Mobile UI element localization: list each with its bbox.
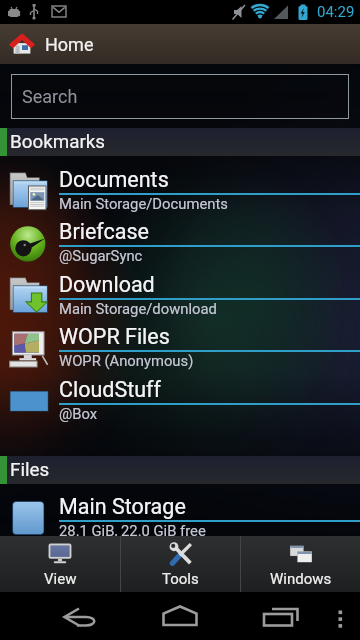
staticText: Main Storage/Documents bbox=[59, 195, 228, 212]
staticText: CloudStuff bbox=[59, 377, 162, 402]
staticText: Main Storage bbox=[59, 494, 186, 519]
button[interactable]: Windows bbox=[241, 536, 360, 592]
button[interactable]: Documents bbox=[0, 157, 360, 209]
staticText: Download bbox=[59, 272, 155, 297]
button[interactable]: Search bbox=[11, 74, 349, 119]
staticText: Windows bbox=[270, 570, 332, 588]
button[interactable]: Tools bbox=[121, 536, 240, 592]
staticText: WOPR (Anonymous) bbox=[59, 352, 194, 369]
button[interactable]: Recent apps bbox=[270, 592, 330, 640]
staticText: 04:29 bbox=[317, 3, 355, 21]
staticText: 28.1 GiB, 22.0 GiB free bbox=[59, 522, 206, 539]
button[interactable]: CloudStuff bbox=[0, 367, 360, 419]
button[interactable]: Main Storage bbox=[0, 484, 360, 537]
staticText: Main Storage/download bbox=[59, 300, 217, 317]
staticText: WOPR Files bbox=[59, 324, 170, 349]
staticText: Tools bbox=[162, 570, 199, 588]
button[interactable]: Briefcase bbox=[0, 209, 360, 262]
staticText: Bookmarks bbox=[10, 131, 105, 153]
staticText: @SugarSync bbox=[59, 247, 143, 264]
button[interactable]: Home bbox=[7, 29, 37, 59]
staticText: Home bbox=[45, 34, 94, 55]
button[interactable]: Back bbox=[0, 592, 120, 640]
staticText: Files bbox=[10, 459, 50, 481]
staticText: @Box bbox=[59, 405, 98, 422]
button[interactable]: View bbox=[0, 536, 120, 592]
button[interactable]: Download bbox=[0, 262, 360, 314]
staticText: Documents bbox=[59, 167, 169, 192]
staticText: Briefcase bbox=[59, 219, 149, 244]
staticText: View bbox=[44, 570, 77, 588]
button[interactable]: WOPR Files bbox=[0, 314, 360, 367]
staticText: Search bbox=[22, 86, 78, 107]
button[interactable]: Home bbox=[120, 592, 240, 640]
